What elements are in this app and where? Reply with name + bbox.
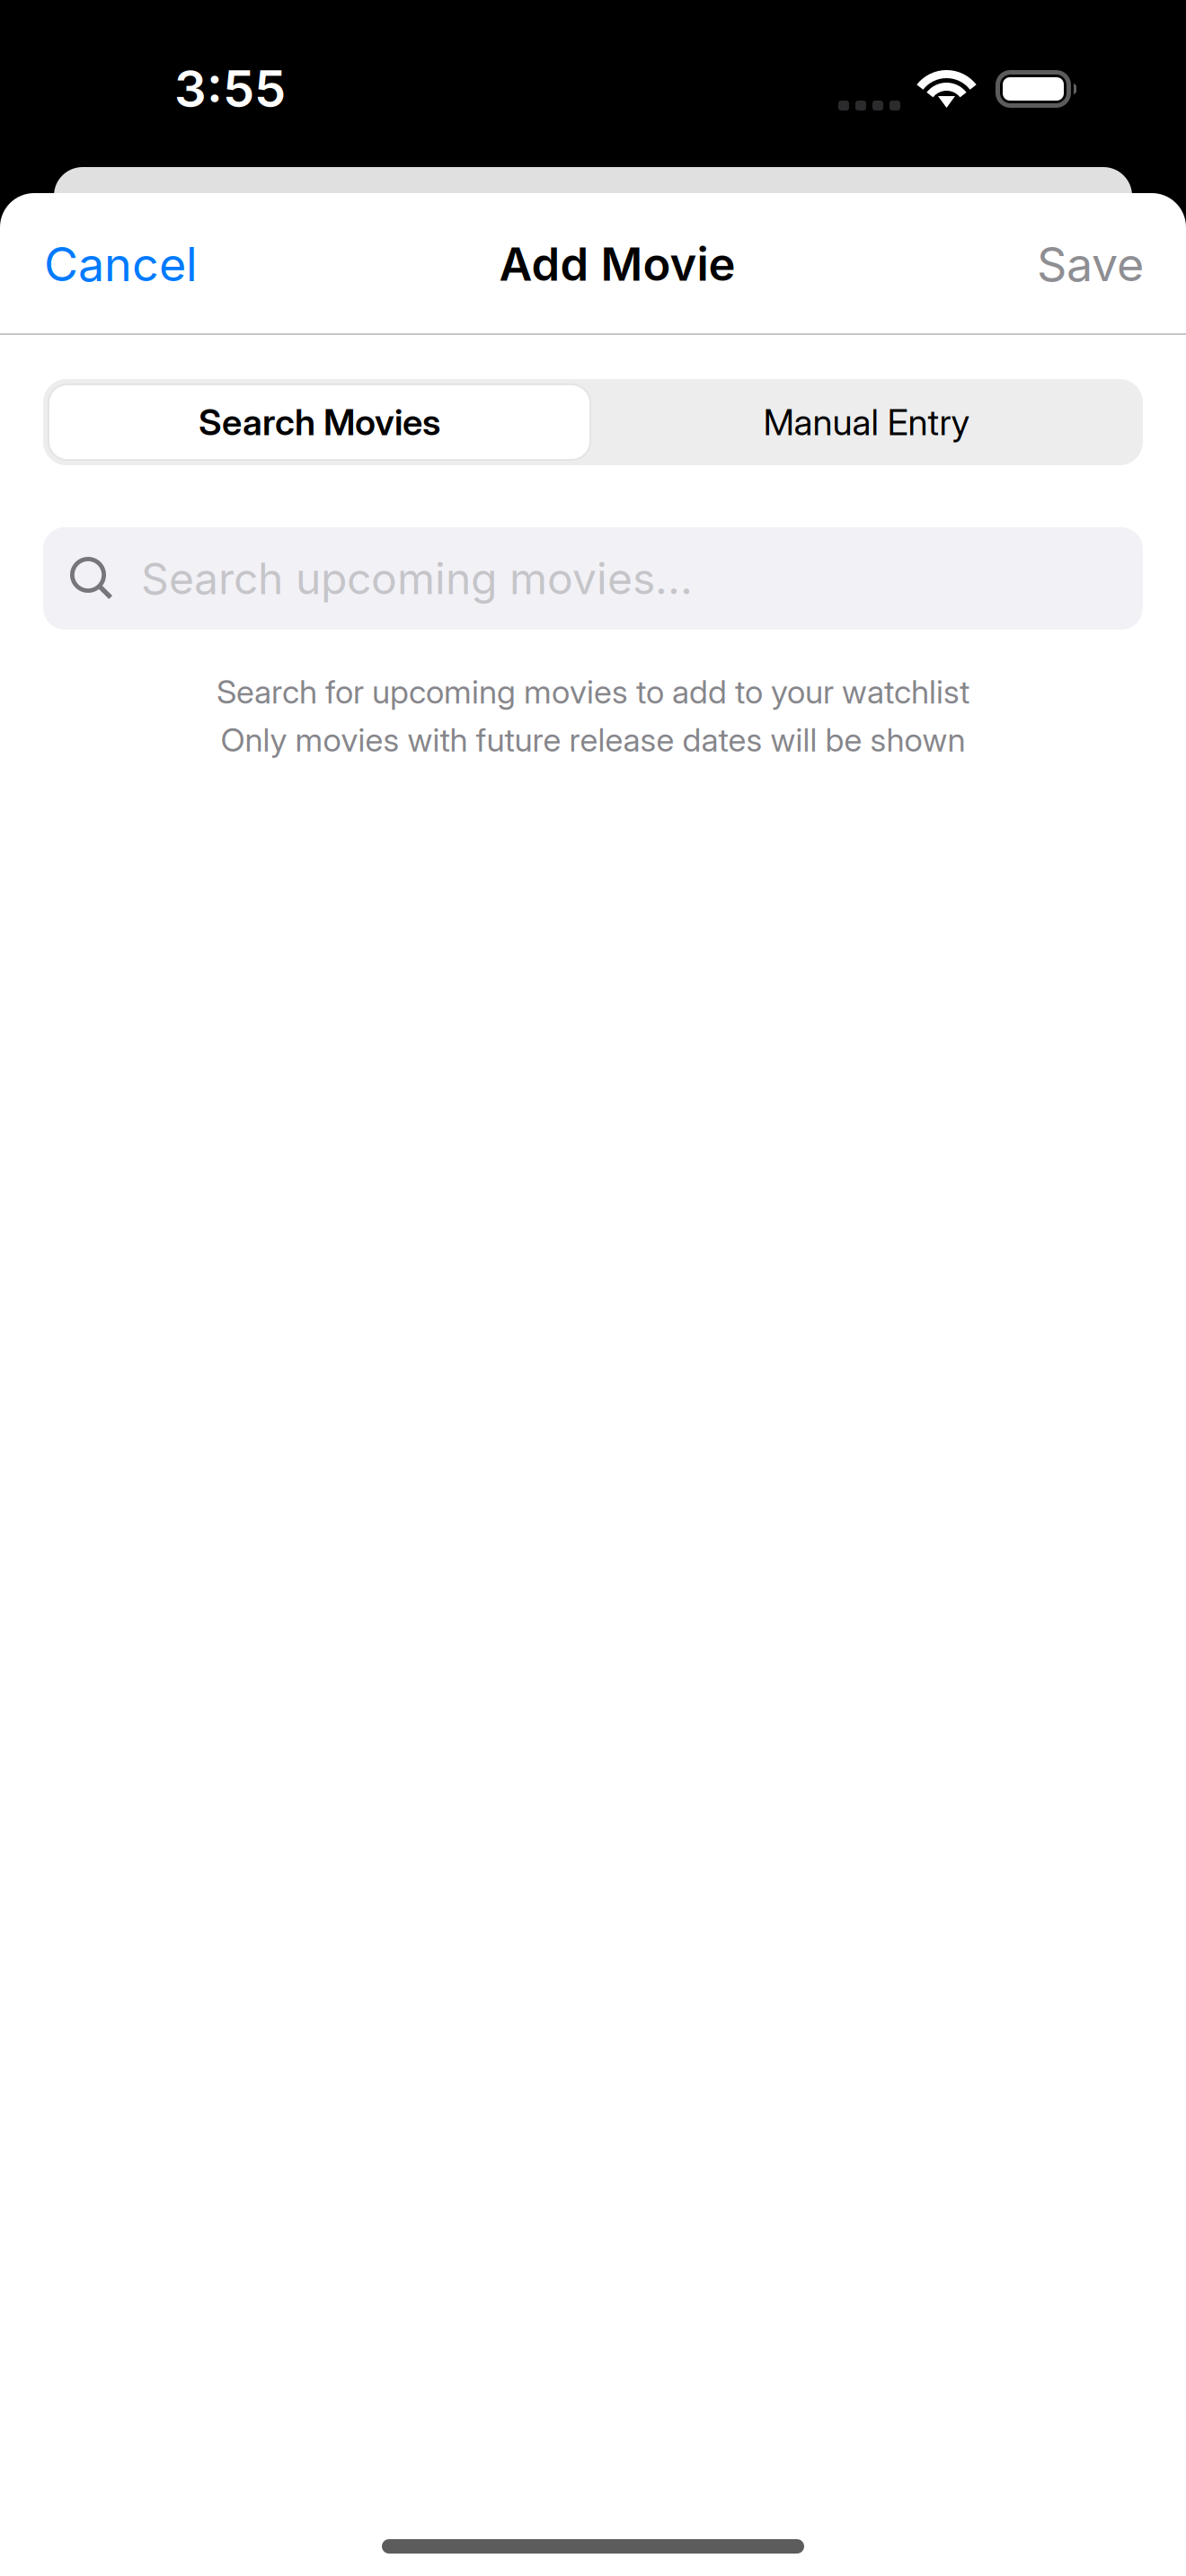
staticText: Manual Entry	[763, 401, 970, 443]
staticText: Cancel	[44, 236, 198, 292]
button[interactable]: Cancel	[0, 213, 221, 315]
staticText: Only movies with future release dates wi…	[221, 721, 965, 759]
staticText: Add Movie	[499, 237, 735, 291]
staticText: Search upcoming movies...	[141, 553, 693, 604]
staticText: Search for upcoming movies to add to you…	[217, 673, 969, 711]
button[interactable]: Save	[1013, 213, 1186, 315]
button[interactable]: Manual Entry	[593, 379, 1143, 465]
staticText: Save	[1037, 236, 1144, 292]
button[interactable]: Search Movies	[43, 379, 593, 465]
staticText: 3:55	[174, 59, 286, 119]
button[interactable]: Search upcoming movies...	[43, 527, 1143, 630]
staticText: Search Movies	[199, 401, 440, 443]
